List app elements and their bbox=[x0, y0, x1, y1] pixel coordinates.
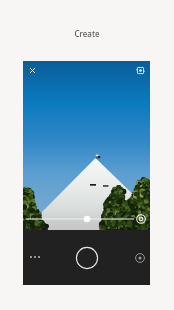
button[interactable]: Close bbox=[23, 61, 42, 80]
button[interactable]: Switch to video mode bbox=[128, 246, 152, 270]
button[interactable]: Switch camera bbox=[131, 61, 150, 80]
button[interactable]: More options bbox=[23, 245, 47, 269]
button[interactable]: Take photo bbox=[75, 246, 99, 270]
staticText: Create bbox=[0, 28, 174, 39]
button[interactable]: Settings bbox=[132, 210, 150, 228]
